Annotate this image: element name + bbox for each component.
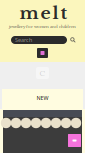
staticText: NEW bbox=[36, 94, 48, 102]
staticText: melt bbox=[19, 2, 67, 24]
staticText: jewellery for women and children bbox=[9, 24, 76, 29]
staticText: C bbox=[39, 68, 45, 78]
button[interactable]: Search bbox=[70, 37, 76, 43]
button[interactable]: Search bbox=[11, 36, 67, 44]
staticText: Search bbox=[15, 36, 32, 44]
button[interactable]: melt home bbox=[37, 48, 48, 58]
button[interactable]: Chat bbox=[68, 134, 81, 147]
